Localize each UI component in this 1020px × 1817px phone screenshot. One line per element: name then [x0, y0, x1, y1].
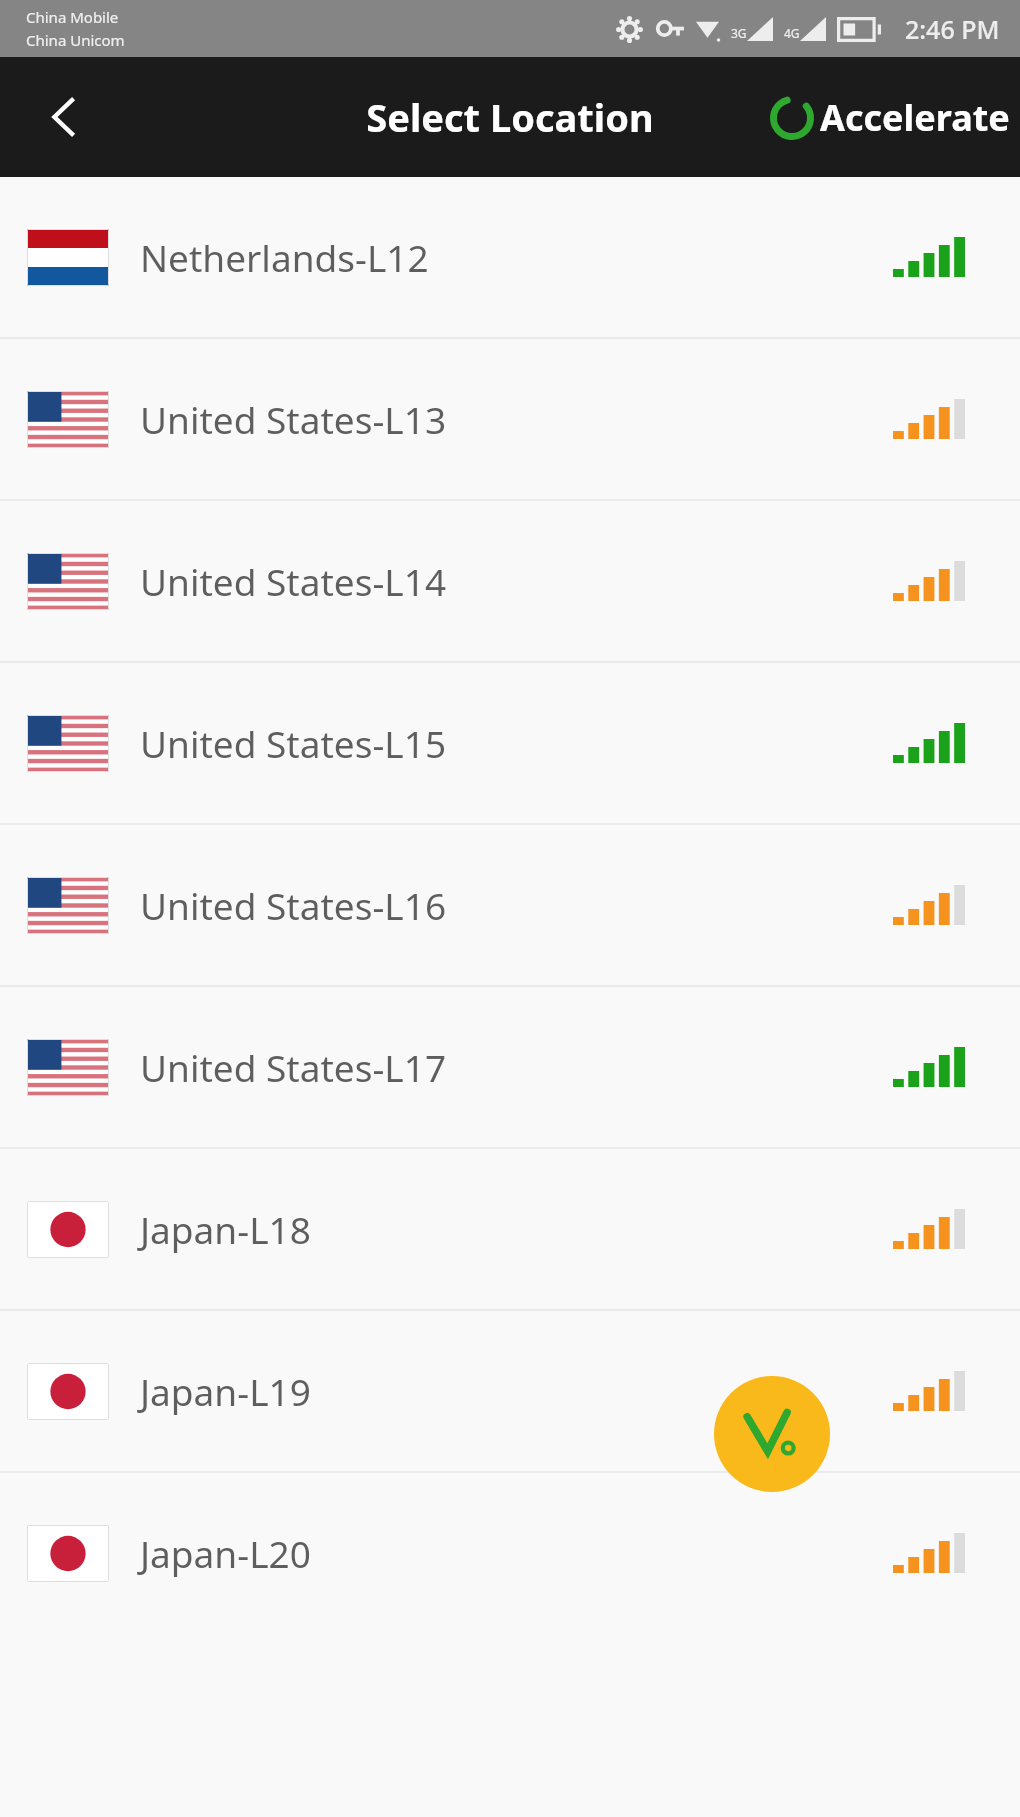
staticText: United States-L17: [140, 1042, 447, 1092]
button[interactable]: United States-L13: [0, 339, 1020, 499]
button[interactable]: Connect: [714, 1376, 830, 1492]
staticText: Japan-L19: [140, 1366, 311, 1416]
staticText: 4G: [784, 25, 800, 41]
staticText: Select Location: [366, 91, 654, 143]
staticText: United States-L15: [140, 718, 447, 768]
staticText: China Unicom: [26, 30, 125, 50]
button[interactable]: United States-L17: [0, 987, 1020, 1147]
staticText: 2:46 PM: [905, 12, 1000, 46]
staticText: United States-L14: [140, 556, 447, 606]
button[interactable]: United States-L14: [0, 501, 1020, 661]
staticText: United States-L16: [140, 880, 447, 930]
button[interactable]: Accelerate: [762, 79, 1016, 156]
button[interactable]: United States-L16: [0, 825, 1020, 985]
staticText: Japan-L18: [140, 1204, 311, 1254]
staticText: United States-L13: [140, 394, 447, 444]
staticText: Netherlands-L12: [140, 232, 429, 282]
staticText: China Mobile: [26, 7, 119, 27]
button[interactable]: Back: [26, 79, 102, 155]
button[interactable]: Japan-L19: [0, 1311, 1020, 1471]
staticText: Japan-L20: [140, 1528, 311, 1578]
button[interactable]: Japan-L18: [0, 1149, 1020, 1309]
button[interactable]: Netherlands-L12: [0, 177, 1020, 337]
button[interactable]: Japan-L20: [0, 1473, 1020, 1633]
button[interactable]: United States-L15: [0, 663, 1020, 823]
staticText: 3G: [731, 25, 747, 41]
staticText: Accelerate: [820, 93, 1010, 142]
